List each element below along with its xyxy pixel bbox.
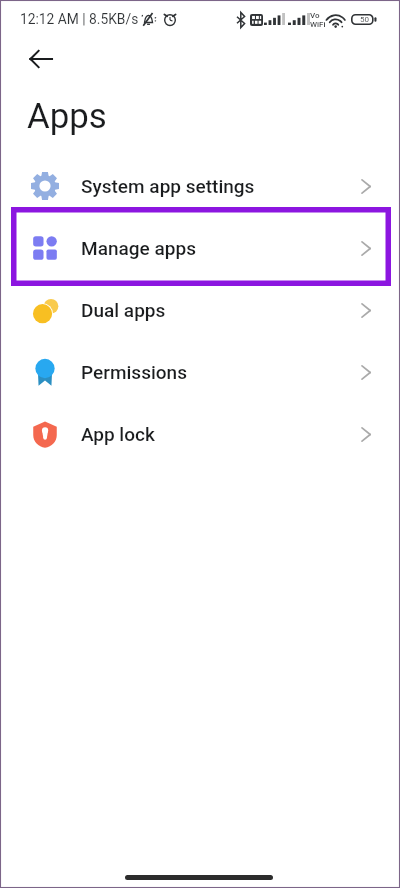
staticText: 12:12 AM | 8.5KB/s (20, 11, 139, 27)
staticText: Manage apps (81, 237, 196, 259)
staticText: Apps (27, 96, 107, 137)
button[interactable]: System app settings (0, 156, 400, 218)
button[interactable]: Back (19, 37, 63, 81)
staticText: Permissions (81, 361, 188, 383)
button[interactable]: Manage apps (0, 218, 400, 280)
staticText: Vo (310, 11, 320, 20)
button[interactable]: Dual apps (0, 280, 400, 342)
staticText: Dual apps (81, 299, 166, 321)
staticText: WiFi (310, 20, 326, 29)
staticText: 50 (360, 15, 369, 24)
staticText: System app settings (81, 175, 255, 197)
button[interactable]: Permissions (0, 342, 400, 404)
button[interactable]: App lock (0, 404, 400, 466)
staticText: App lock (81, 423, 155, 445)
